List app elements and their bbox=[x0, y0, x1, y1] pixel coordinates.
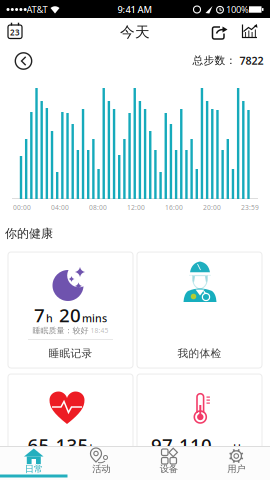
button[interactable]: Share bbox=[208, 21, 232, 43]
button[interactable]: 日常 bbox=[0, 446, 67, 480]
button[interactable]: 我的体检 bbox=[137, 252, 262, 368]
button[interactable]: 65-135 bbox=[8, 374, 133, 480]
staticText: 04:00 bbox=[51, 203, 69, 212]
staticText: 用户 bbox=[227, 463, 245, 475]
button[interactable]: 用户 bbox=[202, 446, 270, 480]
staticText: h bbox=[46, 311, 53, 325]
staticText: mmHg bbox=[213, 441, 248, 455]
staticText: 08:00 bbox=[89, 203, 107, 212]
staticText: 你的健康 bbox=[5, 226, 53, 241]
staticText: 设备 bbox=[160, 463, 178, 475]
staticText: 18:45 bbox=[90, 326, 108, 335]
staticText: 日常 bbox=[25, 463, 43, 475]
staticText: 我的体检 bbox=[177, 347, 221, 360]
staticText: 16:00 bbox=[165, 203, 183, 212]
staticText: 23:59 bbox=[241, 203, 259, 212]
staticText: 97-110 bbox=[151, 433, 212, 457]
staticText: 00:00 bbox=[13, 203, 31, 212]
staticText: 65-135 bbox=[27, 433, 88, 457]
staticText: 睡眠质量：较好 bbox=[32, 326, 88, 335]
staticText: 今天 bbox=[120, 23, 150, 41]
button[interactable]: Calendar bbox=[4, 19, 28, 43]
staticText: 100% bbox=[226, 3, 249, 16]
button[interactable]: Statistics bbox=[239, 21, 261, 41]
staticText: 7822 bbox=[239, 53, 263, 68]
staticText: AT&T bbox=[26, 3, 47, 16]
button[interactable]: 7 bbox=[8, 252, 133, 368]
button[interactable]: 设备 bbox=[135, 446, 202, 480]
staticText: 20 bbox=[54, 303, 81, 327]
staticText: 20:00 bbox=[203, 203, 221, 212]
staticText: 活动 bbox=[92, 463, 110, 475]
staticText: 总步数： bbox=[192, 54, 236, 67]
button[interactable]: 97-110 bbox=[137, 374, 262, 480]
button[interactable]: 活动 bbox=[67, 446, 135, 480]
staticText: mins bbox=[82, 311, 107, 325]
staticText: bpm bbox=[89, 441, 113, 455]
staticText: 23 bbox=[10, 27, 20, 38]
staticText: 7 bbox=[34, 303, 45, 327]
staticText: 12:00 bbox=[127, 203, 145, 212]
staticText: 睡眠记录 bbox=[48, 347, 92, 360]
staticText: 9:41 AM bbox=[117, 3, 152, 16]
button[interactable]: Back bbox=[12, 50, 34, 72]
